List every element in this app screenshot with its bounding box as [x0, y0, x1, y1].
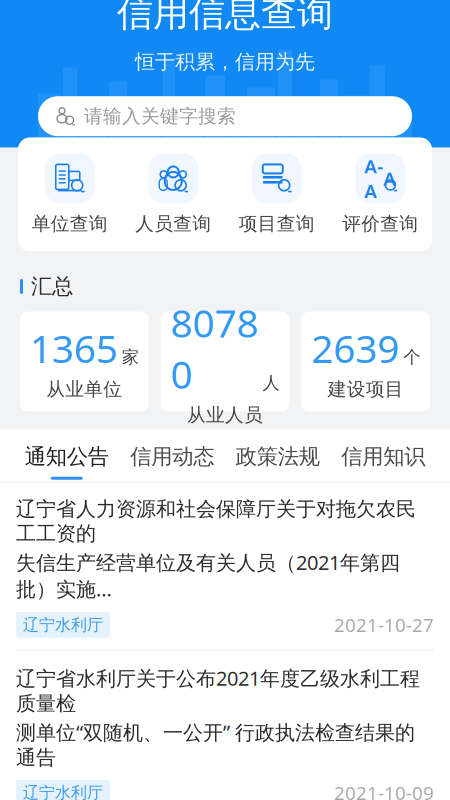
button[interactable]: 人员查询 — [121, 153, 225, 235]
button[interactable]: 项目查询 — [225, 153, 328, 235]
staticText: 单位查询 — [32, 212, 108, 235]
staticText: 2021-10-27 — [334, 612, 434, 637]
staticText: 信用信息查询 — [117, 0, 333, 36]
staticText: 辽宁省水利厅关于公布2021年度乙级水利工程质量检 — [16, 665, 420, 716]
button[interactable]: 政策法规 — [225, 444, 330, 482]
staticText: 人员查询 — [135, 212, 211, 235]
staticText: 汇总 — [31, 273, 73, 300]
staticText: 家 — [122, 347, 139, 368]
staticText: A — [383, 166, 396, 191]
button[interactable]: 信用知识 — [330, 444, 436, 482]
staticText: 通知公告 — [25, 444, 109, 470]
staticText: 评价查询 — [342, 212, 418, 235]
button[interactable]: 信用动态 — [119, 444, 225, 482]
staticText: 信用知识 — [341, 444, 425, 470]
staticText: AA — [364, 154, 383, 203]
button[interactable]: 通知公告 — [14, 444, 119, 482]
staticText: 从业人员 — [187, 403, 263, 426]
staticText: 恒于积累，信用为先 — [135, 50, 315, 74]
button[interactable]: 请输入关键字搜索 — [38, 96, 412, 136]
staticText: 测单位“双随机、一公开” 行政执法检查结果的通告 — [16, 719, 415, 770]
staticText: 个 — [403, 347, 420, 368]
staticText: 辽宁水利厅 — [23, 783, 103, 800]
staticText: 2639 — [311, 322, 399, 374]
staticText: 人 — [262, 372, 279, 394]
staticText: 失信生产经营单位及有关人员（2021年第四批）实施… — [16, 549, 400, 602]
button[interactable]: 辽宁省人力资源和社会保障厅关于对拖欠农民工工资的 — [0, 483, 450, 650]
staticText: 项目查询 — [239, 212, 315, 235]
button[interactable]: AA — [328, 153, 432, 235]
staticText: 信用动态 — [130, 444, 214, 470]
staticText: 辽宁省人力资源和社会保障厅关于对拖欠农民工工资的 — [16, 497, 416, 546]
staticText: 80780 — [170, 297, 258, 399]
staticText: 2021-10-09 — [334, 780, 434, 800]
staticText: 政策法规 — [236, 444, 320, 470]
staticText: 建设项目 — [328, 378, 404, 401]
staticText: 1365 — [30, 322, 118, 374]
staticText: 辽宁水利厅 — [23, 615, 103, 635]
staticText: 从业单位 — [46, 378, 122, 401]
button[interactable]: 单位查询 — [18, 153, 121, 235]
staticText: 请输入关键字搜索 — [84, 105, 236, 128]
button[interactable]: 辽宁省水利厅关于公布2021年度乙级水利工程质量检 — [0, 651, 450, 800]
